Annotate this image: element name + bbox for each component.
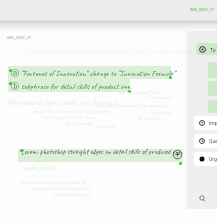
button[interactable] <box>208 62 217 78</box>
staticText: Important <box>209 120 217 126</box>
staticText: general types <box>96 124 116 130</box>
staticText: Urgent <box>209 156 217 162</box>
button[interactable] <box>208 100 217 113</box>
button[interactable]: IMG_0001_01 <box>7 35 32 40</box>
staticText: with the gradual <box>62 120 93 127</box>
staticText: after generating my first to <box>118 90 161 96</box>
staticText: of one hundred <box>148 110 171 116</box>
staticText: Lorem ipsum dolor sit amet, consectetur … <box>20 180 87 186</box>
staticText: for comparison <box>138 116 161 122</box>
staticText: Illustrated paragraph as primary art for… <box>24 45 204 57</box>
button[interactable]: Search <box>198 194 207 203</box>
button[interactable]: IMG_0001_01 <box>190 7 215 12</box>
staticText: IMG_0001_01 <box>190 7 215 12</box>
staticText: under priority <box>24 163 57 172</box>
button[interactable] <box>208 81 217 96</box>
staticText: of the reference <box>148 95 173 101</box>
staticText: IMG_0001_01 <box>7 35 32 40</box>
staticText: ⓞ production types, check, note & make i… <box>8 98 117 107</box>
staticText: to the detail goal connected in the shap… <box>96 103 167 109</box>
button[interactable]: Add comment <box>172 149 183 160</box>
button[interactable]: Lorem: photoshop straight edges on detai… <box>21 147 183 156</box>
staticText: ⓑ subphrase for detail skills of product… <box>11 81 132 91</box>
staticText: and thoughts will be shown <box>45 114 96 121</box>
button[interactable]: To do <box>196 43 217 55</box>
button[interactable]: Urgent <box>194 152 217 166</box>
staticText: photos for sourcing to pass the Epsonton <box>33 108 110 115</box>
staticText: ut labore et dolore magna <box>52 192 91 198</box>
staticText: ⓐ “Fortunes of Innovation” change to “In… <box>11 68 176 78</box>
staticText: adipiscing sed do eiusmod tempor incid <box>32 186 90 192</box>
staticText: Question <box>209 138 217 144</box>
staticText: Lorem: photoshop straight edges on detai… <box>21 147 183 156</box>
button[interactable]: Important <box>194 116 217 130</box>
button[interactable]: Question <box>194 134 217 148</box>
staticText: To do <box>210 47 217 53</box>
